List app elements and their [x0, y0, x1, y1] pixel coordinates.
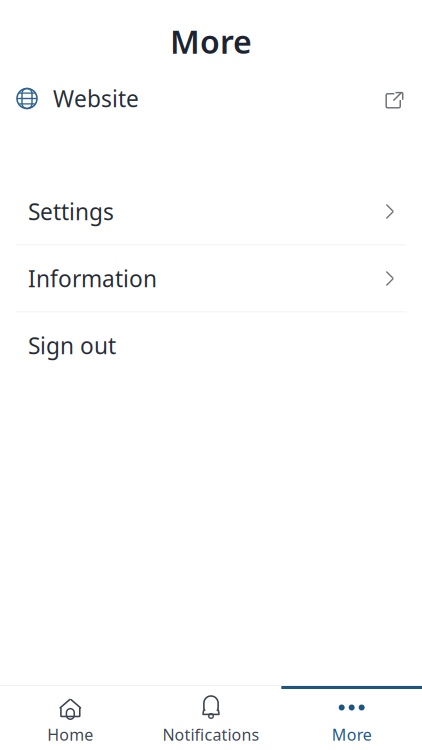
staticText: More — [170, 20, 252, 62]
button[interactable]: Notifications — [141, 686, 281, 750]
button[interactable]: Home — [0, 686, 141, 750]
button[interactable]: Settings — [0, 178, 422, 244]
staticText: Notifications — [162, 724, 259, 745]
staticText: Website — [53, 83, 139, 113]
button[interactable]: Information — [0, 245, 422, 311]
button[interactable]: Website — [0, 76, 422, 120]
staticText: Sign out — [28, 330, 116, 360]
button[interactable]: More — [281, 686, 422, 750]
button[interactable]: Sign out — [0, 312, 422, 378]
staticText: Settings — [28, 196, 114, 226]
staticText: More — [332, 724, 372, 745]
staticText: Home — [47, 724, 93, 745]
staticText: Information — [28, 263, 157, 293]
